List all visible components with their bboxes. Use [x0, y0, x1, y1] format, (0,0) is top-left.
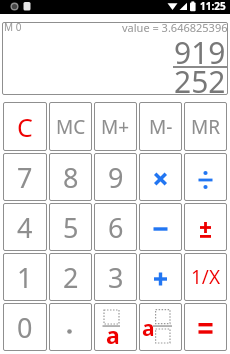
button[interactable]: 0	[3, 303, 47, 351]
button[interactable]	[139, 153, 182, 201]
staticText: a	[106, 319, 120, 350]
button[interactable]	[139, 203, 182, 251]
staticText: 3	[108, 259, 124, 296]
staticText: M+	[101, 114, 130, 140]
button[interactable]: C	[3, 102, 47, 151]
staticText: 0	[17, 309, 33, 346]
staticText: 1	[17, 259, 33, 296]
staticText: M 0	[4, 20, 22, 34]
staticText: value = 3.646825396	[122, 20, 228, 35]
staticText: 6	[108, 209, 124, 246]
staticText: 2	[63, 259, 79, 296]
staticText: 1/X	[191, 264, 221, 290]
button[interactable]	[49, 303, 92, 351]
button[interactable]	[139, 253, 182, 301]
button[interactable]: a	[139, 303, 182, 351]
staticText: MR	[191, 114, 221, 140]
staticText: 9	[108, 159, 124, 196]
button[interactable]: M-	[139, 102, 182, 151]
button[interactable]: 2	[49, 253, 92, 301]
staticText: MC	[56, 114, 86, 140]
button[interactable]: MC	[49, 102, 92, 151]
button[interactable]: 1/X	[184, 253, 227, 301]
staticText: 8	[63, 159, 79, 196]
button[interactable]: 3	[94, 253, 137, 301]
button[interactable]: 7	[3, 153, 47, 201]
button[interactable]: 9	[94, 153, 137, 201]
staticText: 252	[174, 61, 226, 102]
staticText: 5	[63, 209, 79, 246]
button[interactable]: M+	[94, 102, 137, 151]
button[interactable]: 6	[94, 203, 137, 251]
button[interactable]	[184, 203, 227, 251]
button[interactable]: 5	[49, 203, 92, 251]
button[interactable]: 1	[3, 253, 47, 301]
button[interactable]	[184, 303, 227, 351]
button[interactable]: a	[94, 303, 137, 351]
staticText: 7	[17, 159, 33, 196]
staticText: M-	[149, 114, 173, 140]
button[interactable]	[184, 153, 227, 201]
button[interactable]: 8	[49, 153, 92, 201]
staticText: 11:25	[200, 0, 226, 13]
staticText: a	[142, 314, 155, 343]
staticText: C	[17, 110, 33, 144]
staticText: 4	[17, 209, 33, 246]
button[interactable]: MR	[184, 102, 227, 151]
button[interactable]: 4	[3, 203, 47, 251]
staticText: 919	[174, 32, 226, 73]
